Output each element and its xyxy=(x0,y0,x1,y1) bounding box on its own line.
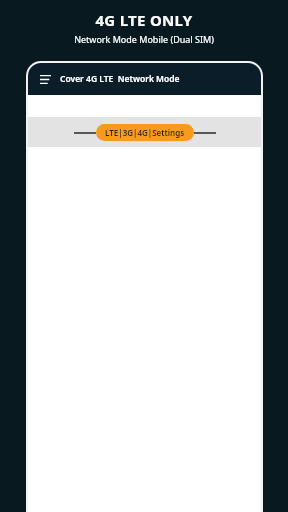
staticText: 4G LTE ONLY xyxy=(0,10,288,30)
staticText: Cover 4G LTE Network Mode xyxy=(60,73,180,85)
button[interactable]: Open navigation menu xyxy=(36,70,54,88)
staticText: LTE|3G|4G|Settings xyxy=(105,127,185,138)
staticText: Network Mode Mobile (Dual SIM) xyxy=(0,33,288,45)
button[interactable]: LTE|3G|4G|Settings xyxy=(96,124,194,141)
